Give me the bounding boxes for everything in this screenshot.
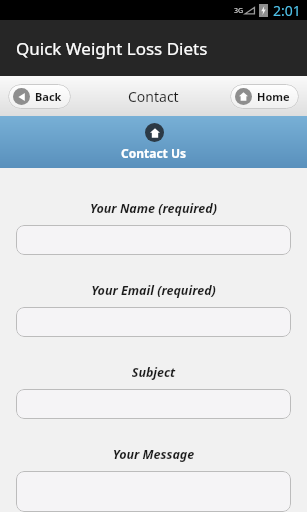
staticText: Quick Weight Loss Diets	[16, 37, 208, 60]
staticText: 2:01	[273, 1, 301, 20]
other: Contact Us	[145, 123, 164, 142]
button[interactable]: Back	[8, 84, 71, 109]
staticText: Your Email (required)	[16, 282, 291, 299]
staticText: Back	[35, 89, 62, 104]
staticText: Your Name (required)	[16, 200, 291, 217]
staticText: Subject	[16, 364, 291, 381]
button[interactable]	[16, 389, 291, 419]
staticText: Contact Us	[121, 145, 187, 161]
button[interactable]: Home	[230, 84, 299, 109]
button[interactable]	[16, 225, 291, 255]
staticText: 3G	[234, 6, 244, 16]
button[interactable]: Contact Us	[0, 116, 307, 168]
staticText: Contact	[128, 87, 179, 106]
staticText: Home	[257, 89, 290, 104]
button[interactable]	[16, 307, 291, 337]
staticText: Your Message	[16, 446, 291, 463]
button[interactable]	[16, 471, 291, 512]
